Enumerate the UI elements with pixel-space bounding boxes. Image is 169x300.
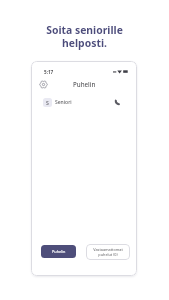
button[interactable]: S — [31, 96, 137, 109]
staticText: Soita seniorille helposti. — [46, 23, 123, 50]
button[interactable]: Vastaamattomat puhelut (0) — [86, 244, 130, 260]
button[interactable]: Call — [114, 99, 121, 106]
staticText: Puhelin — [52, 249, 66, 254]
button[interactable]: Puhelin — [41, 245, 76, 258]
staticText: Puhelin — [73, 80, 96, 88]
staticText: 5:17 — [44, 69, 54, 75]
staticText: Seniori — [55, 99, 72, 106]
staticText: Vastaamattomat puhelut (0) — [93, 247, 123, 257]
staticText: S — [46, 99, 49, 106]
button[interactable]: Settings — [39, 80, 48, 89]
